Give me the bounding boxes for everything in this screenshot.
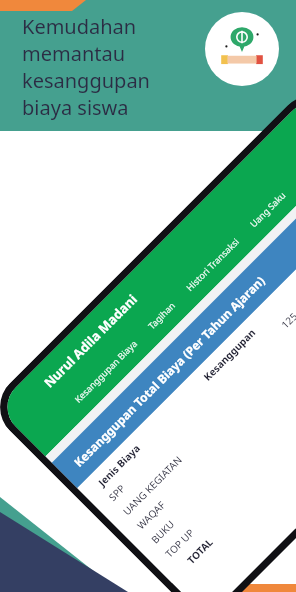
staticText: Histori Transaksi (183, 235, 241, 293)
button[interactable]: SPP (87, 183, 296, 512)
staticText: TOP UP (162, 367, 296, 560)
staticText: 125.000 (278, 295, 296, 331)
button[interactable]: Uang Saku (238, 179, 296, 239)
staticText: SPP (105, 310, 296, 504)
button[interactable]: UANG KEGIATAN (101, 197, 296, 526)
button[interactable]: BUKU (129, 225, 296, 555)
button[interactable]: Histori Transaksi (174, 226, 250, 302)
staticText: Kesanggupan Total Biaya (Per Tahun Ajara… (70, 272, 268, 470)
staticText: TOTAL (184, 381, 296, 567)
staticText: Tagihan (145, 299, 178, 331)
staticText: Kesanggupan Biaya (72, 337, 139, 405)
staticText: Uang Saku (247, 188, 288, 229)
staticText: 125.000 (292, 309, 296, 345)
button[interactable]: Kesanggupan Biaya (62, 328, 149, 414)
button[interactable]: TOP UP (144, 239, 296, 569)
staticText: UANG KEGIATAN (120, 324, 296, 518)
staticText: Nurul Adila Madani (40, 290, 141, 391)
other: App logo (205, 12, 279, 86)
staticText: Kemudahan memantau kesanggupan biaya sis… (22, 13, 150, 121)
button[interactable]: Tagihan (136, 290, 187, 340)
staticText: BUKU (148, 353, 296, 546)
staticText: WAQAF (134, 338, 296, 532)
staticText: Kesanggupan (200, 325, 259, 384)
staticText: Jenis Biaya (95, 360, 224, 489)
button[interactable]: WAQAF (115, 211, 296, 541)
